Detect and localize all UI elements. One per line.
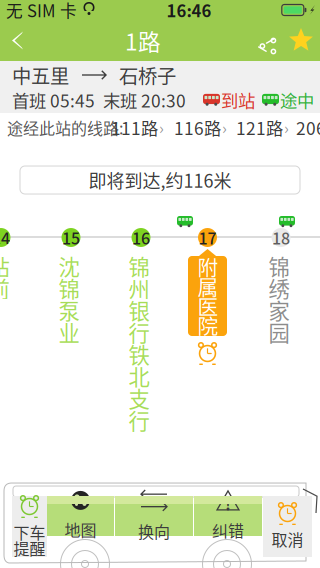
- staticText: 换向: [138, 519, 170, 543]
- button[interactable]: 14: [0, 228, 14, 302]
- staticText: 取消: [271, 527, 303, 551]
- staticText: 116路: [174, 115, 221, 140]
- staticText: 附: [197, 252, 218, 282]
- button[interactable]: 即将到达,约116米: [20, 166, 300, 194]
- staticText: 锦: [58, 273, 79, 303]
- staticText: 石桥子: [119, 61, 176, 89]
- staticText: ›: [284, 116, 289, 139]
- staticText: ›: [159, 116, 164, 139]
- staticText: 业: [58, 317, 79, 347]
- button[interactable]: 116路: [174, 115, 227, 140]
- staticText: 121路: [236, 115, 283, 140]
- staticText: 206: [296, 115, 320, 140]
- staticText: 1路: [125, 24, 161, 57]
- button[interactable]: 111路: [111, 115, 164, 140]
- staticText: 沈: [58, 251, 79, 281]
- staticText: 银: [128, 295, 149, 325]
- staticText: 下车: [13, 520, 45, 544]
- staticText: 锦: [128, 251, 149, 281]
- staticText: 提醒: [13, 536, 45, 560]
- staticText: 行: [128, 405, 149, 435]
- staticText: 首班 05:45 末班 20:30: [12, 87, 186, 113]
- staticText: 园: [268, 317, 289, 347]
- staticText: 14: [0, 226, 10, 249]
- staticText: 泵: [58, 295, 79, 325]
- staticText: 地图: [64, 518, 96, 541]
- staticText: 16:46: [166, 0, 211, 22]
- staticText: 行: [128, 317, 149, 347]
- button[interactable]: 换向: [115, 496, 194, 557]
- staticText: 医: [197, 291, 218, 321]
- staticText: 无 SIM 卡: [6, 0, 77, 22]
- staticText: 支: [128, 383, 149, 413]
- staticText: 绣: [268, 273, 289, 303]
- staticText: 即将到达,约116米: [88, 167, 231, 193]
- staticText: !: [225, 492, 231, 515]
- button[interactable]: 下车: [12, 496, 47, 557]
- button[interactable]: 16: [128, 228, 154, 434]
- staticText: 15: [62, 226, 80, 249]
- button[interactable]: !: [194, 496, 263, 557]
- staticText: 中五里: [12, 61, 69, 89]
- staticText: 16: [132, 226, 150, 249]
- staticText: 途中: [280, 87, 314, 113]
- staticText: 北: [128, 361, 149, 391]
- staticText: 18: [272, 226, 290, 249]
- staticText: 到站: [221, 87, 255, 113]
- staticText: 院: [197, 310, 218, 340]
- staticText: 111路: [111, 115, 158, 140]
- button[interactable]: Share: [249, 21, 280, 59]
- staticText: 州: [128, 273, 149, 303]
- staticText: 锦: [268, 251, 289, 281]
- button[interactable]: 121路: [236, 115, 289, 140]
- staticText: 铁: [128, 339, 149, 369]
- button[interactable]: 附: [188, 228, 233, 373]
- button[interactable]: 地图: [47, 496, 115, 557]
- staticText: ›: [222, 116, 227, 139]
- staticText: 前: [0, 273, 9, 303]
- button[interactable]: Back: [0, 19, 37, 61]
- staticText: 站: [0, 251, 9, 281]
- staticText: 途经此站的线路:: [7, 116, 123, 139]
- button[interactable]: 15: [58, 228, 84, 346]
- button[interactable]: Favorite: [288, 21, 320, 59]
- staticText: 属: [197, 271, 218, 301]
- staticText: 纠错: [212, 518, 244, 542]
- staticText: 17: [198, 226, 216, 249]
- staticText: 家: [268, 295, 289, 325]
- button[interactable]: 18: [268, 228, 294, 346]
- button[interactable]: 取消: [263, 496, 312, 557]
